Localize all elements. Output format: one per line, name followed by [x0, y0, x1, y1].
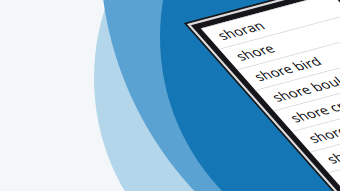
button[interactable]: shore bird	[17, 105, 243, 149]
button[interactable]: shore boulder	[17, 149, 243, 191]
button[interactable]: shore	[17, 61, 243, 105]
button[interactable]: shoran	[17, 17, 243, 61]
staticText: shore bird	[33, 112, 143, 142]
staticText: shore boulder	[33, 156, 184, 186]
staticText: shoran	[33, 24, 108, 54]
